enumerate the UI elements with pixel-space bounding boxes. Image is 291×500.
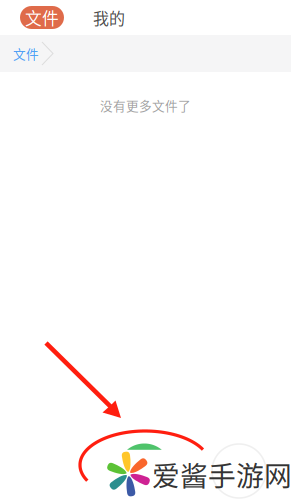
staticText: 文件: [13, 44, 39, 63]
staticText: 没有更多文件了: [100, 96, 191, 114]
button[interactable]: 文件: [20, 6, 64, 29]
staticText: 我的: [93, 6, 125, 29]
button[interactable]: 我的: [87, 6, 131, 29]
staticText: 文件: [25, 5, 59, 29]
button[interactable]: 文件: [0, 41, 54, 65]
staticText: 爱酱手游网: [152, 454, 291, 494]
